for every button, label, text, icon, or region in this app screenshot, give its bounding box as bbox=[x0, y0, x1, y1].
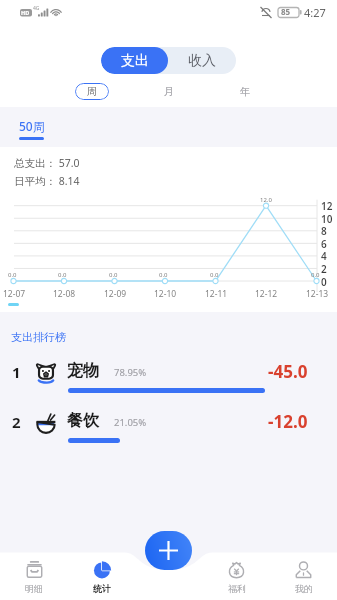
staticText: 0.0 bbox=[159, 271, 168, 279]
staticText: 2 bbox=[12, 412, 21, 432]
staticText: 6 bbox=[321, 237, 327, 251]
staticText: 日平均： 8.14 bbox=[14, 174, 80, 188]
staticText: 12-13 bbox=[306, 288, 329, 300]
staticText: 福利 bbox=[228, 583, 246, 594]
staticText: 支出 bbox=[121, 52, 149, 70]
staticText: 统计 bbox=[93, 583, 111, 594]
staticText: 明细 bbox=[25, 583, 43, 594]
staticText: 餐饮 bbox=[67, 411, 99, 431]
staticText: 支出排行榜 bbox=[11, 330, 66, 344]
staticText: 0.0 bbox=[8, 271, 17, 279]
staticText: 2 bbox=[321, 262, 327, 276]
staticText: 总支出： 57.0 bbox=[14, 156, 80, 170]
staticText: 12-11 bbox=[205, 288, 228, 300]
staticText: 0.0 bbox=[58, 271, 67, 279]
staticText: 我的 bbox=[295, 583, 313, 594]
staticText: 12.0 bbox=[260, 196, 272, 204]
staticText: 8 bbox=[321, 224, 327, 238]
staticText: 宠物 bbox=[67, 361, 99, 381]
button[interactable]: 2 bbox=[0, 402, 337, 444]
staticText: 12-07 bbox=[3, 288, 26, 300]
button[interactable]: 统计 bbox=[68, 560, 136, 594]
staticText: 12-09 bbox=[104, 288, 127, 300]
button[interactable]: 收入 bbox=[168, 47, 236, 74]
staticText: 21.05% bbox=[114, 416, 147, 429]
staticText: HD bbox=[21, 9, 30, 16]
staticText: 12-10 bbox=[154, 288, 177, 300]
staticText: 0.0 bbox=[109, 271, 118, 279]
button[interactable]: 福利 bbox=[203, 560, 270, 594]
staticText: 12 bbox=[321, 199, 333, 213]
staticText: 85 bbox=[281, 6, 291, 17]
button[interactable]: 年 bbox=[228, 83, 262, 100]
button[interactable]: 支出 bbox=[101, 47, 168, 74]
staticText: 周 bbox=[87, 85, 97, 98]
staticText: 1 bbox=[12, 362, 21, 382]
staticText: -45.0 bbox=[268, 360, 308, 383]
staticText: 12-08 bbox=[53, 288, 76, 300]
staticText: 4 bbox=[321, 249, 327, 263]
button[interactable]: 明细 bbox=[0, 560, 68, 594]
button[interactable]: 月 bbox=[152, 83, 186, 100]
button[interactable]: Add transaction bbox=[145, 531, 192, 570]
staticText: 12-12 bbox=[255, 288, 278, 300]
staticText: 4G bbox=[33, 5, 40, 12]
button[interactable]: 周 bbox=[75, 83, 109, 100]
button[interactable]: 50周 bbox=[19, 118, 45, 140]
staticText: 0.0 bbox=[311, 271, 320, 279]
staticText: -12.0 bbox=[268, 410, 308, 433]
staticText: 0.0 bbox=[210, 271, 219, 279]
staticText: 4:27 bbox=[304, 5, 326, 20]
staticText: 月 bbox=[164, 85, 174, 98]
staticText: 10 bbox=[321, 212, 333, 226]
staticText: 收入 bbox=[188, 52, 216, 70]
staticText: 0 bbox=[321, 275, 327, 289]
button[interactable]: 1 bbox=[0, 352, 337, 394]
staticText: 年 bbox=[240, 85, 250, 98]
staticText: 50周 bbox=[19, 118, 45, 134]
staticText: 78.95% bbox=[114, 366, 147, 379]
button[interactable]: 我的 bbox=[270, 560, 337, 594]
